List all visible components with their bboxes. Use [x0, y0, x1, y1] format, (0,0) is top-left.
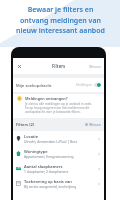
staticText: Woningtype [24, 149, 48, 154]
staticText: Je ziet nu alle meldingen op je aanbod i… [25, 102, 93, 114]
staticText: Filters (2) [16, 122, 35, 127]
staticText: Locatie [24, 134, 39, 139]
staticText: Mijn zoekopdracht [16, 83, 52, 88]
button[interactable]: Wissen [89, 64, 101, 69]
staticText: Meldingen [76, 83, 92, 87]
button[interactable]: Toekenning op basis van [13, 176, 104, 191]
button[interactable]: Close [15, 62, 23, 70]
staticText: Bewaar je filters en ontvang meldingen v… [16, 5, 105, 35]
button[interactable]: Woningtype [13, 146, 104, 161]
button[interactable]: Meldingen aan [94, 83, 101, 87]
staticText: Aantal slaapkamers [24, 164, 63, 169]
button[interactable]: Locatie [13, 131, 104, 146]
staticText: Meldingen ontvangen? [25, 96, 68, 101]
button[interactable]: Wissen [85, 122, 101, 127]
staticText: Wissen [89, 122, 101, 127]
staticText: Bij eerste aangemeld, inschrijving [24, 184, 77, 188]
staticText: Filters [52, 63, 66, 69]
staticText: Utrecht, Amsterdam (+Plus) | Best [24, 139, 77, 143]
staticText: Toekenning op basis van [24, 179, 72, 184]
staticText: 1 slaapkamer, 2 slaapkamers [24, 169, 69, 173]
button[interactable]: Aantal slaapkamers [13, 161, 104, 176]
staticText: Appartement, Eengezinswoning [24, 154, 74, 158]
